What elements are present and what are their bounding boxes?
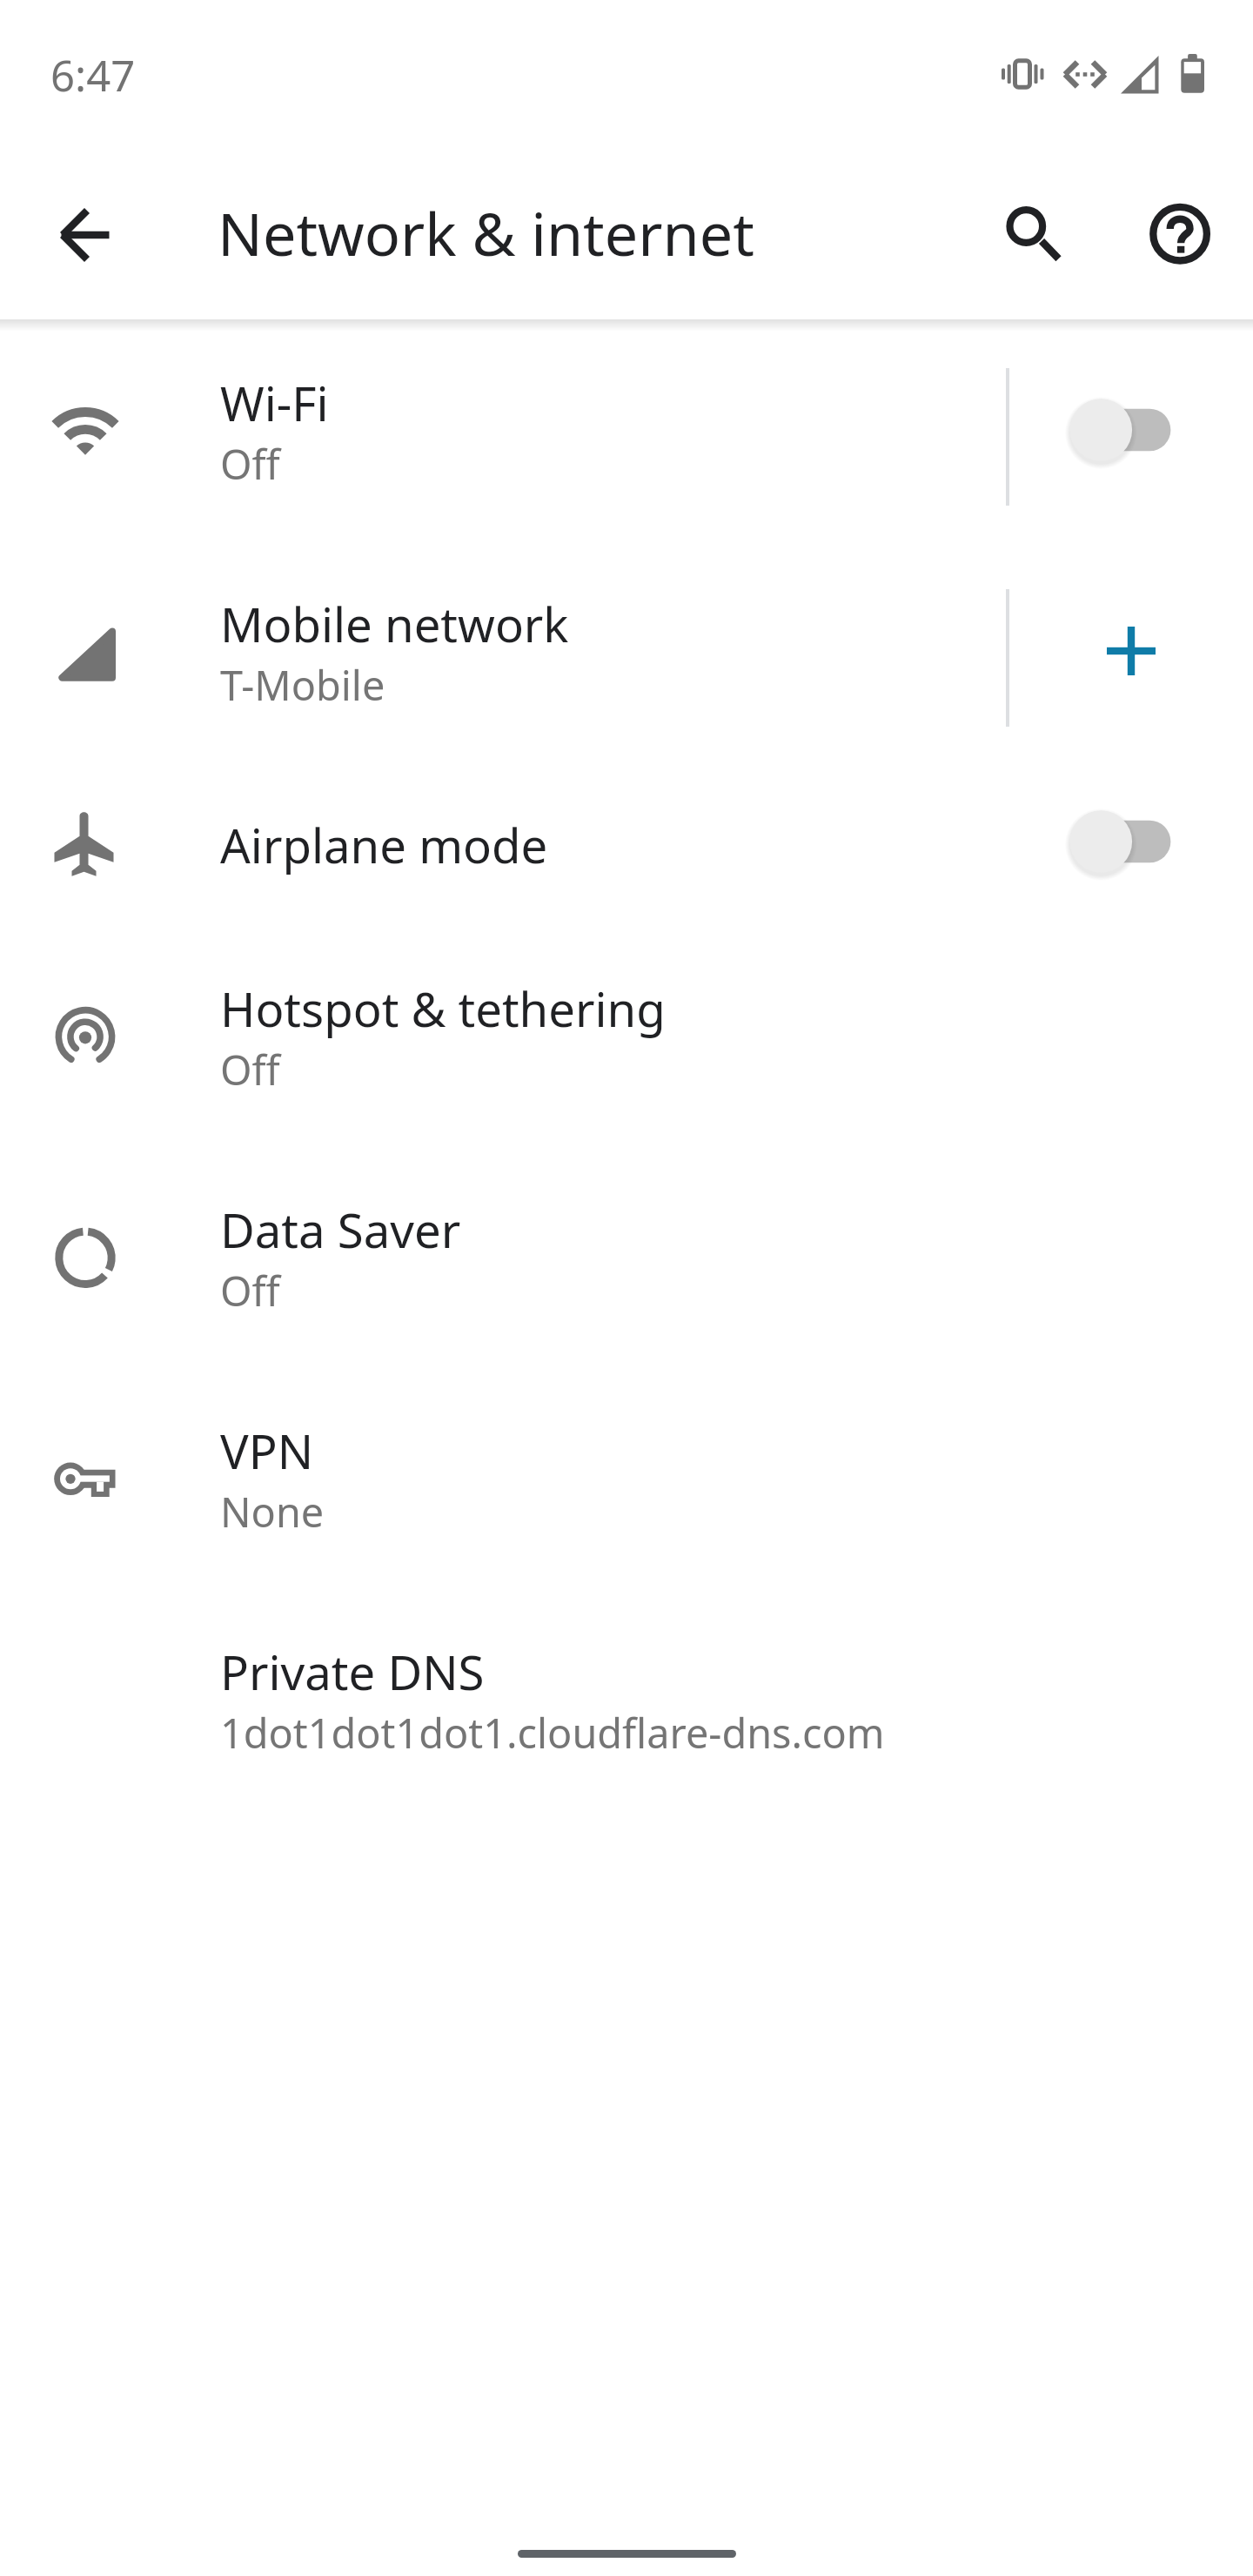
button[interactable]: Airplane mode switch (1044, 789, 1218, 894)
staticText: Off (220, 1042, 280, 1097)
button[interactable]: Hotspot & tethering (0, 943, 1253, 1164)
button[interactable]: Wi-Fi switch (1044, 378, 1218, 482)
staticText: Data Saver (220, 1197, 461, 1262)
staticText: Hotspot & tethering (220, 976, 666, 1041)
staticText: Mobile network (220, 592, 569, 656)
button[interactable]: Wi-Fi (0, 337, 1253, 558)
staticText: 1dot1dot1dot1.cloudflare-dns.com (220, 1705, 885, 1761)
button[interactable]: VPN (0, 1385, 1253, 1606)
staticText: VPN (220, 1419, 314, 1483)
button[interactable]: Add network (1044, 599, 1218, 703)
staticText: 6:47 (50, 46, 136, 104)
staticText: Off (220, 1263, 280, 1318)
staticText: T-Mobile (220, 657, 385, 713)
button[interactable]: Data Saver (0, 1164, 1253, 1385)
staticText: Airplane mode (220, 813, 548, 877)
button[interactable]: Search (984, 184, 1068, 268)
staticText: Private DNS (220, 1640, 485, 1704)
button[interactable]: Airplane mode (0, 763, 1253, 927)
button[interactable]: Navigate up (44, 193, 127, 277)
staticText: Off (220, 436, 280, 492)
button[interactable]: Mobile network (0, 558, 1253, 779)
button[interactable]: Private DNS (0, 1606, 1253, 1827)
staticText: Wi-Fi (220, 371, 329, 435)
button[interactable]: Help (1138, 191, 1222, 275)
staticText: Network & internet (218, 192, 754, 273)
staticText: None (220, 1484, 325, 1540)
